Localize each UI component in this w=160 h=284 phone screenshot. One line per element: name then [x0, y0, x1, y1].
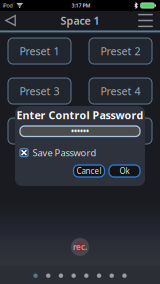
staticText: Enter Control Password: [16, 108, 143, 122]
staticText: Ok: [119, 166, 129, 176]
staticText: Preset 2: [100, 44, 140, 58]
button[interactable]: Preset 3: [8, 78, 71, 104]
button[interactable]: Preset 2: [89, 38, 152, 64]
staticText: ••••••: [71, 126, 89, 136]
staticText: Preset 6: [100, 124, 140, 138]
button[interactable]: Menu: [129, 10, 160, 31]
button[interactable]: Preset 6: [89, 118, 152, 144]
staticText: Preset 1: [19, 44, 59, 58]
button[interactable]: Save Password: [20, 145, 96, 160]
staticText: 3:17 PM: [71, 2, 90, 9]
staticText: Save Password: [32, 146, 96, 159]
staticText: Preset 5: [19, 124, 59, 138]
button[interactable]: Back: [0, 11, 25, 30]
staticText: Preset 4: [100, 84, 140, 98]
button[interactable]: Preset 5: [8, 118, 71, 144]
button[interactable]: Ok: [109, 165, 140, 177]
staticText: Space 1: [60, 13, 99, 28]
staticText: Preset 3: [19, 84, 59, 98]
staticText: Cancel: [76, 166, 101, 176]
button[interactable]: Preset 4: [89, 78, 152, 104]
button[interactable]: Cancel: [73, 165, 104, 177]
staticText: iPod: [2, 2, 12, 9]
staticText: rec.: [73, 242, 87, 252]
button[interactable]: Preset 1: [8, 38, 71, 64]
